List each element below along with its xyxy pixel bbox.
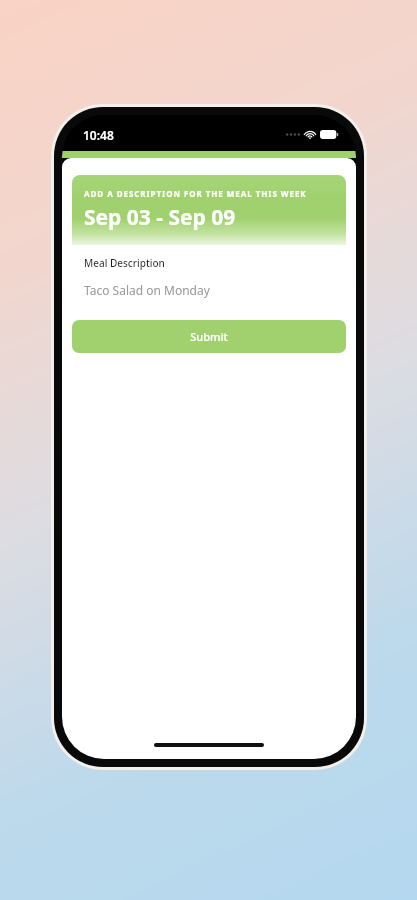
button[interactable]: Taco Salad on Monday — [84, 282, 334, 298]
staticText: Taco Salad on Monday — [84, 282, 210, 298]
button[interactable]: Submit — [72, 320, 346, 353]
staticText: Submit — [190, 329, 228, 344]
button[interactable]: ADD A DESCRIPTION FOR THE MEAL THIS WEEK — [72, 175, 346, 245]
staticText: Sep 03 - Sep 09 — [84, 203, 236, 232]
other: Wi-Fi — [304, 130, 316, 139]
staticText: ADD A DESCRIPTION FOR THE MEAL THIS WEEK — [84, 188, 307, 199]
staticText: Meal Description — [84, 256, 165, 270]
other: Battery — [320, 130, 339, 139]
staticText: 10:48 — [83, 127, 114, 143]
